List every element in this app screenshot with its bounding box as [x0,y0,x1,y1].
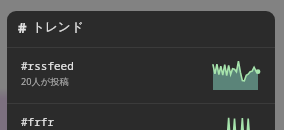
button[interactable]: #rssfeed [7,48,275,103]
staticText: 20人が投稿 [21,75,69,88]
staticText: #rssfeed [21,58,74,73]
staticText: # [18,18,27,37]
staticText: #frfr [21,114,54,129]
button[interactable]: # [7,11,275,47]
staticText: トレンド [32,19,84,35]
button[interactable]: #frfr [7,104,275,130]
